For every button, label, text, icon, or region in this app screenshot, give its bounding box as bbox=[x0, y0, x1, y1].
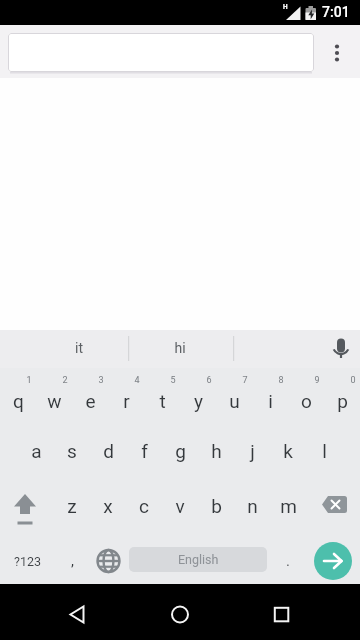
button[interactable]: 9 bbox=[310, 374, 324, 386]
staticText: 7:01 bbox=[322, 4, 350, 20]
staticText: d bbox=[103, 440, 114, 462]
button[interactable]: s bbox=[54, 425, 90, 477]
staticText: 2 bbox=[62, 375, 68, 386]
staticText: b bbox=[211, 495, 222, 517]
staticText: o bbox=[301, 390, 312, 412]
staticText: c bbox=[139, 495, 149, 517]
staticText: English bbox=[178, 552, 219, 567]
button[interactable] bbox=[8, 33, 314, 72]
button[interactable]: h bbox=[198, 425, 234, 477]
staticText: g bbox=[175, 440, 186, 462]
button[interactable]: v bbox=[162, 480, 198, 532]
staticText: 9 bbox=[314, 375, 320, 386]
staticText: 7 bbox=[242, 375, 248, 386]
staticText: H bbox=[283, 3, 288, 11]
staticText: 6 bbox=[206, 375, 212, 386]
button[interactable]: d bbox=[90, 425, 126, 477]
button[interactable]: r bbox=[108, 376, 144, 426]
button[interactable] bbox=[323, 39, 351, 67]
staticText: a bbox=[31, 440, 42, 462]
button[interactable]: m bbox=[270, 480, 306, 532]
staticText: q bbox=[13, 390, 24, 412]
staticText: 5 bbox=[170, 375, 176, 386]
staticText: j bbox=[250, 440, 255, 462]
staticText: s bbox=[67, 440, 77, 462]
button[interactable]: p bbox=[324, 376, 360, 426]
staticText: . bbox=[286, 552, 290, 570]
staticText: e bbox=[85, 390, 96, 412]
button[interactable]: 8 bbox=[274, 374, 288, 386]
staticText: ?123 bbox=[14, 554, 41, 569]
button[interactable]: n bbox=[234, 480, 270, 532]
button[interactable]: ?123 bbox=[0, 535, 54, 587]
staticText: z bbox=[67, 495, 77, 517]
staticText: 8 bbox=[278, 375, 284, 386]
button[interactable] bbox=[258, 590, 306, 634]
staticText: l bbox=[322, 440, 327, 462]
button[interactable]: c bbox=[126, 480, 162, 532]
staticText: x bbox=[103, 495, 113, 517]
staticText: w bbox=[47, 390, 62, 412]
button[interactable]: j bbox=[234, 425, 270, 477]
button[interactable]: , bbox=[54, 535, 90, 587]
staticText: 1 bbox=[26, 375, 32, 386]
button[interactable]: k bbox=[270, 425, 306, 477]
button[interactable]: hi bbox=[135, 329, 225, 367]
button[interactable]: x bbox=[90, 480, 126, 532]
button[interactable]: i bbox=[252, 376, 288, 426]
staticText: n bbox=[247, 495, 258, 517]
button[interactable] bbox=[314, 542, 352, 580]
staticText: 4 bbox=[134, 375, 140, 386]
button[interactable]: l bbox=[306, 425, 342, 477]
button[interactable]: 5 bbox=[166, 374, 180, 386]
staticText: u bbox=[229, 390, 240, 412]
button[interactable]: a bbox=[18, 425, 54, 477]
staticText: m bbox=[280, 495, 297, 517]
button[interactable] bbox=[156, 590, 204, 634]
staticText: 0 bbox=[350, 375, 356, 386]
button[interactable]: o bbox=[288, 376, 324, 426]
button[interactable] bbox=[306, 480, 360, 532]
staticText: i bbox=[268, 390, 273, 412]
button[interactable]: g bbox=[162, 425, 198, 477]
button[interactable]: t bbox=[144, 376, 180, 426]
button[interactable]: 4 bbox=[130, 374, 144, 386]
button[interactable]: it bbox=[34, 329, 124, 367]
staticText: t bbox=[159, 390, 166, 412]
button[interactable]: w bbox=[36, 376, 72, 426]
button[interactable]: . bbox=[270, 535, 306, 587]
button[interactable] bbox=[0, 480, 54, 532]
button[interactable] bbox=[53, 590, 101, 634]
staticText: it bbox=[75, 340, 83, 356]
button[interactable]: f bbox=[126, 425, 162, 477]
button[interactable]: 2 bbox=[58, 374, 72, 386]
staticText: p bbox=[337, 390, 348, 412]
staticText: v bbox=[175, 495, 185, 517]
button[interactable]: e bbox=[72, 376, 108, 426]
staticText: h bbox=[211, 440, 222, 462]
staticText: f bbox=[141, 440, 148, 462]
button[interactable]: u bbox=[216, 376, 252, 426]
staticText: y bbox=[194, 390, 203, 412]
button[interactable]: 6 bbox=[202, 374, 216, 386]
button[interactable]: y bbox=[180, 376, 216, 426]
button[interactable]: q bbox=[0, 376, 36, 426]
button[interactable]: English bbox=[129, 547, 267, 572]
staticText: k bbox=[283, 440, 293, 462]
button[interactable] bbox=[90, 535, 126, 587]
button[interactable]: 3 bbox=[94, 374, 108, 386]
button[interactable]: 1 bbox=[22, 374, 36, 386]
button[interactable]: b bbox=[198, 480, 234, 532]
button[interactable]: 7 bbox=[238, 374, 252, 386]
staticText: , bbox=[71, 552, 74, 570]
staticText: hi bbox=[174, 340, 186, 356]
button[interactable]: 0 bbox=[346, 374, 360, 386]
staticText: r bbox=[123, 390, 130, 412]
button[interactable]: z bbox=[54, 480, 90, 532]
staticText: 3 bbox=[98, 375, 104, 386]
